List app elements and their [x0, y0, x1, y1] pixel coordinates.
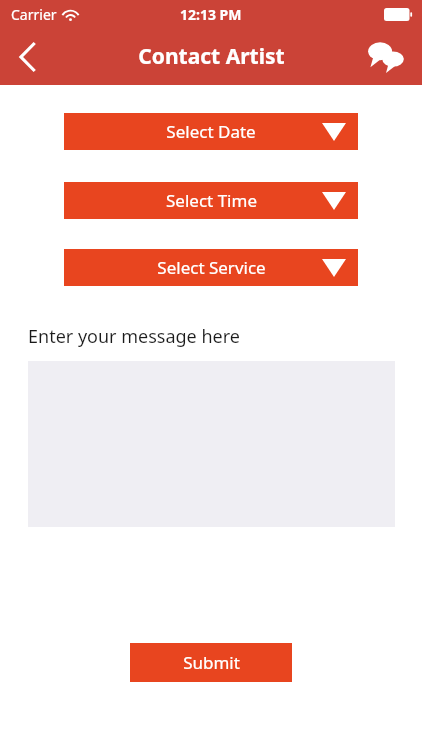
staticText: Select Service [157, 256, 266, 279]
staticText: 12:13 PM [180, 5, 242, 24]
button[interactable]: Submit [130, 643, 292, 682]
staticText: Carrier [11, 5, 57, 24]
staticText: Select Time [166, 189, 257, 212]
staticText: Submit [183, 651, 240, 674]
button[interactable]: Back [0, 29, 56, 85]
button[interactable]: Select Time [64, 182, 358, 219]
button[interactable]: Select Service [64, 249, 358, 286]
staticText: Enter your message here [28, 324, 240, 349]
button[interactable]: Messages [362, 33, 410, 81]
staticText: Contact Artist [138, 42, 285, 71]
staticText: Select Date [166, 120, 256, 143]
button[interactable]: Select Date [64, 113, 358, 150]
